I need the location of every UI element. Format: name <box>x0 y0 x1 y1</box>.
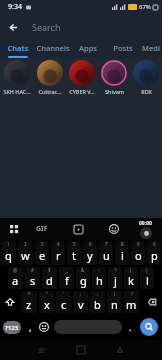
staticText: u <box>103 248 110 263</box>
button[interactable]: Sticker <box>60 218 96 240</box>
staticText: j <box>114 273 117 288</box>
button[interactable]: 0 <box>147 241 161 265</box>
button[interactable]: 8 <box>115 241 129 265</box>
button[interactable]: ?123 <box>0 314 24 340</box>
staticText: SKH HAC… <box>3 88 31 95</box>
button[interactable]: Emoji <box>36 314 52 340</box>
staticText: " <box>46 291 48 297</box>
button[interactable]: Space <box>54 320 122 334</box>
button[interactable]: CYBER V… <box>66 60 98 100</box>
staticText: @ <box>13 267 18 273</box>
staticText: & <box>81 267 85 273</box>
staticText: v <box>78 297 84 312</box>
staticText: + <box>114 267 117 273</box>
staticText: k <box>128 273 134 288</box>
button[interactable]: * <box>21 291 37 313</box>
button[interactable]: Shivam <box>98 60 130 100</box>
staticText: # <box>31 267 34 273</box>
staticText: 9:34 <box>8 2 22 12</box>
button[interactable]: Recent apps <box>22 340 61 360</box>
staticText: Channels <box>36 43 70 53</box>
button[interactable]: Voice typing <box>132 218 158 240</box>
button[interactable]: Search <box>26 14 162 40</box>
button[interactable]: Posts <box>105 40 140 58</box>
button[interactable]: ' <box>56 291 71 313</box>
button[interactable]: Chats <box>0 40 35 58</box>
staticText: b <box>94 297 101 312</box>
button[interactable]: ! <box>107 291 122 313</box>
staticText: ' <box>63 291 65 297</box>
button[interactable]: _ <box>59 267 74 289</box>
button[interactable]: Shift <box>0 290 20 314</box>
staticText: Medi <box>142 43 160 53</box>
button[interactable]: ? <box>124 291 139 313</box>
button[interactable]: " <box>39 291 54 313</box>
button[interactable]: Medi <box>140 40 162 58</box>
button[interactable]: GIF <box>24 218 60 240</box>
button[interactable]: $ <box>42 267 57 289</box>
staticText: c <box>61 297 67 312</box>
button[interactable]: Emoji <box>96 218 132 240</box>
button[interactable]: 3 <box>35 241 49 265</box>
button[interactable]: ) <box>140 267 154 289</box>
button[interactable]: Channels <box>35 40 70 58</box>
staticText: s <box>30 273 36 288</box>
staticText: - <box>98 267 100 273</box>
staticText: Apps <box>79 43 97 53</box>
button[interactable]: RDX <box>130 60 162 100</box>
staticText: GIF <box>36 224 48 234</box>
staticText: 1 <box>7 241 10 247</box>
button[interactable]: + <box>108 267 122 289</box>
button[interactable]: 2 <box>18 241 33 265</box>
button[interactable]: & <box>76 267 90 289</box>
button[interactable]: 9 <box>131 241 145 265</box>
staticText: RDX <box>141 88 152 95</box>
button[interactable]: @ <box>8 267 23 289</box>
button[interactable]: 4 <box>51 241 65 265</box>
staticText: q <box>5 248 12 263</box>
staticText: z <box>26 297 32 312</box>
button[interactable]: Apps <box>70 40 105 58</box>
staticText: ?123 <box>5 324 19 332</box>
staticText: l <box>146 273 149 288</box>
staticText: ( <box>130 267 132 273</box>
button[interactable]: Home <box>61 340 100 360</box>
staticText: CYBER V… <box>69 88 95 95</box>
staticText: Cuttrac… <box>38 88 62 95</box>
button[interactable]: 5 <box>67 241 81 265</box>
button[interactable]: Back <box>0 14 26 40</box>
staticText: d <box>46 273 53 288</box>
staticText: a <box>12 273 19 288</box>
button[interactable]: SKH HAC… <box>0 60 33 100</box>
staticText: h <box>96 273 103 288</box>
staticText: y <box>87 248 93 263</box>
staticText: . <box>129 321 132 333</box>
staticText: Posts <box>113 43 133 53</box>
button[interactable]: 7 <box>99 241 113 265</box>
button[interactable]: Backspace <box>140 290 162 314</box>
staticText: * <box>28 291 31 297</box>
staticText: : <box>80 291 82 297</box>
button[interactable]: : <box>73 291 88 313</box>
button[interactable]: - <box>92 267 106 289</box>
button[interactable]: Cuttrac… <box>33 60 66 100</box>
staticText: 0 <box>153 241 156 247</box>
button[interactable]: # <box>25 267 40 289</box>
staticText: 4 <box>57 241 60 247</box>
staticText: Shivam <box>105 88 124 95</box>
staticText: 3 <box>41 241 44 247</box>
button[interactable]: Menu <box>4 219 24 239</box>
staticText: r <box>56 248 61 263</box>
button[interactable]: ; <box>90 291 105 313</box>
button[interactable]: 1 <box>1 241 16 265</box>
button[interactable]: 6 <box>83 241 97 265</box>
button[interactable]: Search <box>136 314 162 340</box>
button[interactable]: Back <box>100 340 139 360</box>
staticText: , <box>29 321 32 333</box>
button[interactable]: ( <box>124 267 138 289</box>
button[interactable]: Period <box>124 314 136 340</box>
staticText: n <box>111 297 118 312</box>
staticText: ! <box>114 291 116 297</box>
button[interactable]: Comma <box>24 314 36 340</box>
staticText: Search <box>32 21 61 33</box>
